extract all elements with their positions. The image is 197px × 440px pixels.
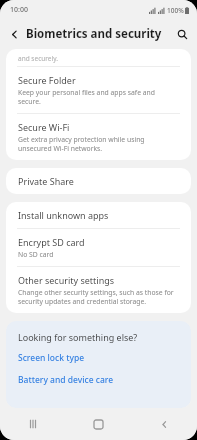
- staticText: Secure Wi-Fi: [18, 121, 70, 133]
- staticText: Keep your personal files and apps safe a…: [18, 88, 179, 106]
- staticText: Looking for something else?: [18, 331, 138, 343]
- button[interactable]: Private Share: [6, 168, 191, 194]
- staticText: Screen lock type: [18, 352, 85, 364]
- button[interactable]: Search: [172, 24, 192, 44]
- staticText: Get extra privacy protection while using…: [18, 135, 179, 153]
- button[interactable]: Recents: [0, 408, 65, 440]
- staticText: Install unknown apps: [18, 209, 109, 221]
- button[interactable]: Encrypt SD card: [6, 229, 191, 266]
- staticText: Other security settings: [18, 274, 115, 286]
- staticText: Change other security settings, such as …: [18, 288, 179, 306]
- button[interactable]: Back: [4, 24, 24, 44]
- button[interactable]: Install unknown apps: [6, 202, 191, 228]
- staticText: 100%: [167, 6, 184, 15]
- button[interactable]: Other security settings: [6, 267, 191, 313]
- button[interactable]: Battery and device care: [6, 369, 191, 391]
- button[interactable]: and securely.: [6, 49, 191, 66]
- staticText: Battery and device care: [18, 374, 114, 386]
- button[interactable]: Screen lock type: [6, 347, 191, 369]
- staticText: Private Share: [18, 175, 74, 187]
- button[interactable]: Secure Wi-Fi: [6, 114, 191, 160]
- button[interactable]: Home: [65, 408, 131, 440]
- staticText: Secure Folder: [18, 74, 76, 86]
- staticText: 10:00: [10, 5, 28, 15]
- button[interactable]: Secure Folder: [6, 67, 191, 113]
- staticText: and securely.: [18, 54, 58, 63]
- staticText: No SD card: [18, 250, 54, 259]
- button[interactable]: Back: [131, 408, 197, 440]
- staticText: Encrypt SD card: [18, 236, 85, 248]
- staticText: Biometrics and security: [26, 26, 162, 42]
